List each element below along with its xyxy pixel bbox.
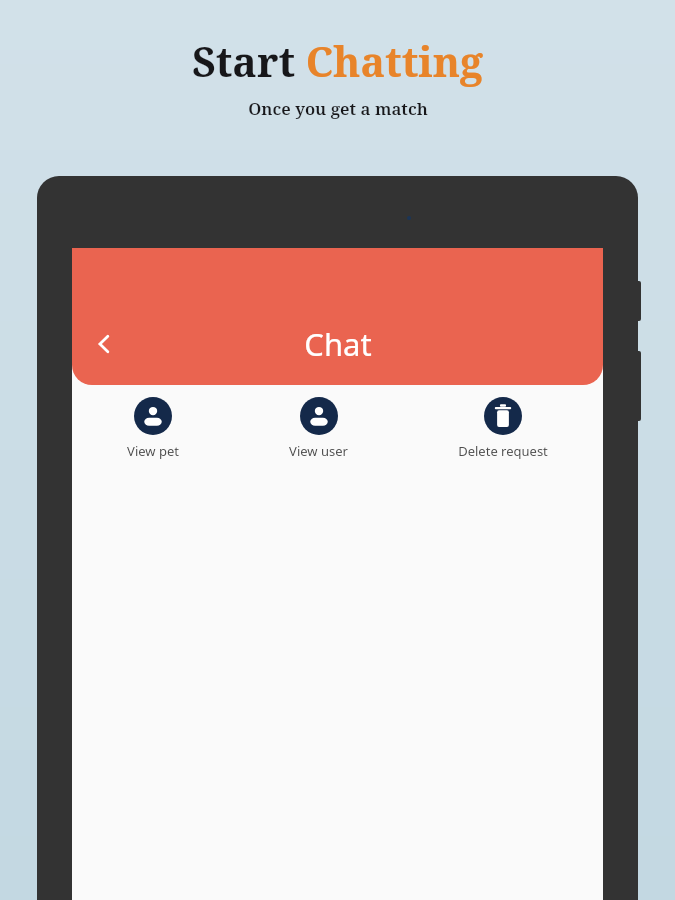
staticText: Chat: [304, 323, 372, 365]
staticText: Once you get a match: [248, 97, 428, 120]
button[interactable]: View user: [283, 395, 354, 462]
button[interactable]: View pet: [121, 395, 185, 462]
staticText: Start Chatting: [192, 33, 483, 89]
staticText: View pet: [127, 442, 179, 460]
staticText: Delete request: [458, 442, 548, 460]
staticText: View user: [289, 442, 348, 460]
button[interactable]: Back: [78, 318, 130, 370]
button[interactable]: Delete request: [452, 395, 554, 462]
